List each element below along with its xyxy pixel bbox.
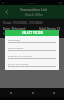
staticText: Item, Shipment <box>3 27 26 31</box>
staticText: SELECT FILTER <box>22 31 43 35</box>
staticText: To dt: 31/12/2023 <box>8 62 29 65</box>
button[interactable]: From dt: 01/01/2023 <box>8 54 56 59</box>
button[interactable]: Select Center <box>8 46 56 51</box>
button[interactable]: Home <box>0 88 22 97</box>
button[interactable]: To dt: 31/12/2023 <box>8 62 56 67</box>
staticText: Total Items: 12 <box>39 27 61 31</box>
button[interactable]: Back <box>0 5 13 18</box>
staticText: Transaction List <box>20 7 47 12</box>
staticText: Select Center <box>8 46 24 49</box>
button[interactable]: Search <box>22 88 43 97</box>
button[interactable]: Username <box>8 38 56 43</box>
staticText: Status <box>3 32 11 36</box>
staticText: Period : 01/01/2023 - 31/12/2023 <box>3 21 43 25</box>
staticText: From dt: 01/01/2023 <box>8 54 32 57</box>
staticText: Amount <box>24 32 35 36</box>
button[interactable]: Profile <box>43 88 64 97</box>
staticText: Username <box>8 38 21 41</box>
staticText: Branch Office <box>25 13 43 17</box>
